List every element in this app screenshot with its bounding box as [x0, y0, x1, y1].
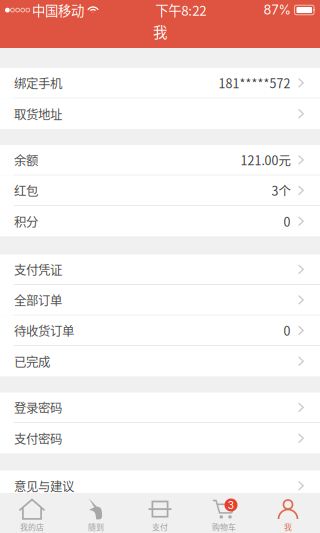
staticText: 意见与建议	[14, 477, 74, 495]
staticText: 余额	[14, 151, 38, 169]
staticText: 取货地址	[14, 105, 62, 123]
button[interactable]: 取货地址	[0, 98, 320, 129]
staticText: 3个	[271, 181, 290, 199]
staticText: 购物车	[212, 521, 236, 532]
staticText: 全部订单	[14, 291, 62, 309]
staticText: 支付凭证	[14, 260, 62, 278]
staticText: 0	[283, 321, 290, 339]
button[interactable]: 红包	[0, 175, 320, 206]
staticText: 红包	[14, 181, 38, 199]
button[interactable]: 3	[192, 493, 256, 533]
staticText: 121.00元	[240, 151, 290, 169]
staticText: 支付	[152, 521, 168, 532]
staticText: 我的店	[20, 521, 44, 532]
button[interactable]: 全部订单	[0, 285, 320, 315]
staticText: 待收货订单	[14, 321, 74, 339]
button[interactable]: 绑定手机	[0, 68, 320, 98]
button[interactable]: 支付凭证	[0, 254, 320, 285]
staticText: 我	[284, 521, 292, 532]
button[interactable]: 我	[256, 493, 320, 533]
button[interactable]: 登录密码	[0, 392, 320, 423]
button[interactable]: 积分	[0, 206, 320, 236]
staticText: 绑定手机	[14, 74, 62, 92]
button[interactable]: 意见与建议	[0, 470, 320, 501]
staticText: 181*****572	[218, 74, 290, 92]
staticText: 登录密码	[14, 398, 62, 416]
button[interactable]: 余额	[0, 145, 320, 175]
staticText: 已完成	[14, 352, 50, 370]
button[interactable]: 已完成	[0, 346, 320, 376]
staticText: 0	[283, 212, 290, 230]
button[interactable]: 支付	[128, 493, 192, 533]
staticText: 中国移动	[32, 0, 84, 20]
button[interactable]: 支付密码	[0, 423, 320, 453]
staticText: 我	[153, 21, 167, 42]
button[interactable]: 我的店	[0, 493, 64, 533]
button[interactable]: 待收货订单	[0, 315, 320, 346]
staticText: 积分	[14, 212, 38, 230]
staticText: 3	[227, 498, 234, 511]
staticText: 下午8:22	[155, 0, 206, 20]
button[interactable]: 随到	[64, 493, 128, 533]
staticText: 随到	[88, 521, 104, 532]
staticText: 支付密码	[14, 429, 62, 447]
staticText: 87%	[263, 2, 290, 18]
